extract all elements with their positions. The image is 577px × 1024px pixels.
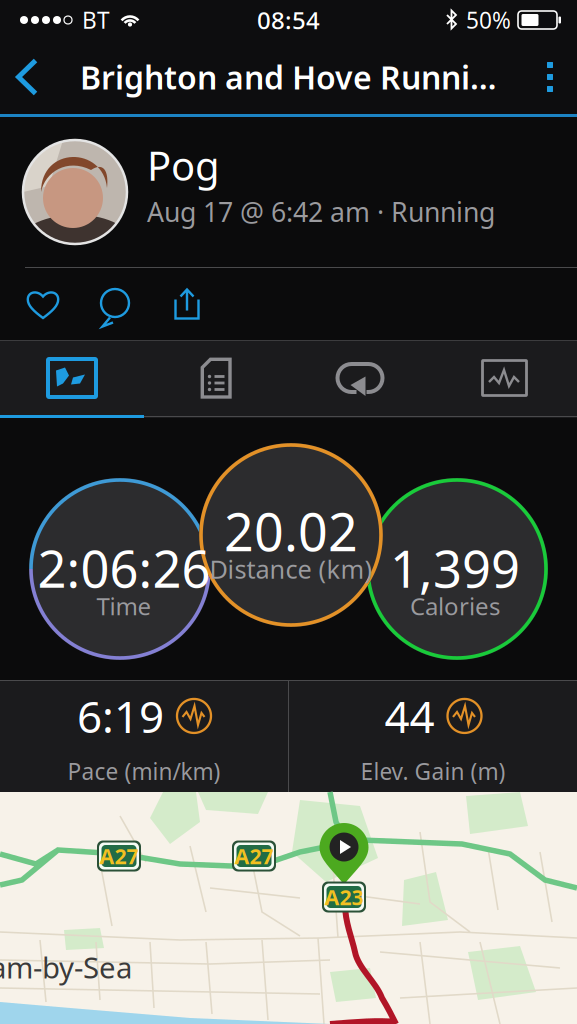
- button[interactable]: Comment: [79, 268, 151, 340]
- staticText: Elev. Gain (m): [360, 756, 505, 786]
- button[interactable]: Map: [0, 341, 144, 415]
- staticText: 50%: [466, 5, 511, 35]
- staticText: Aug 17 @ 6:42 am · Running: [147, 194, 495, 229]
- button[interactable]: Back: [0, 40, 54, 114]
- button[interactable]: Laps: [288, 341, 432, 415]
- staticText: Pace (min/km): [67, 756, 220, 786]
- staticText: 2:06:26: [37, 534, 210, 602]
- button[interactable]: Share: [151, 268, 223, 340]
- staticText: 20.02: [224, 496, 358, 566]
- staticText: Distance (km): [209, 552, 372, 586]
- button[interactable]: Summary: [144, 341, 288, 415]
- staticText: 08:54: [257, 4, 320, 36]
- staticText: A23: [324, 883, 363, 911]
- staticText: A27: [99, 842, 138, 870]
- staticText: 1,399: [390, 534, 520, 602]
- staticText: A27: [234, 842, 273, 870]
- button[interactable]: Like: [7, 268, 79, 340]
- staticText: 44: [384, 687, 434, 745]
- staticText: Brighton and Hove Runni…: [80, 56, 497, 98]
- staticText: 6:19: [77, 687, 164, 745]
- button[interactable]: More options: [523, 40, 577, 114]
- button[interactable]: Charts: [432, 341, 577, 415]
- staticText: Pog: [147, 139, 220, 192]
- staticText: BT: [82, 5, 110, 35]
- staticText: Time: [96, 590, 151, 622]
- staticText: Calories: [410, 590, 500, 622]
- staticText: ham-by-Sea: [0, 947, 132, 986]
